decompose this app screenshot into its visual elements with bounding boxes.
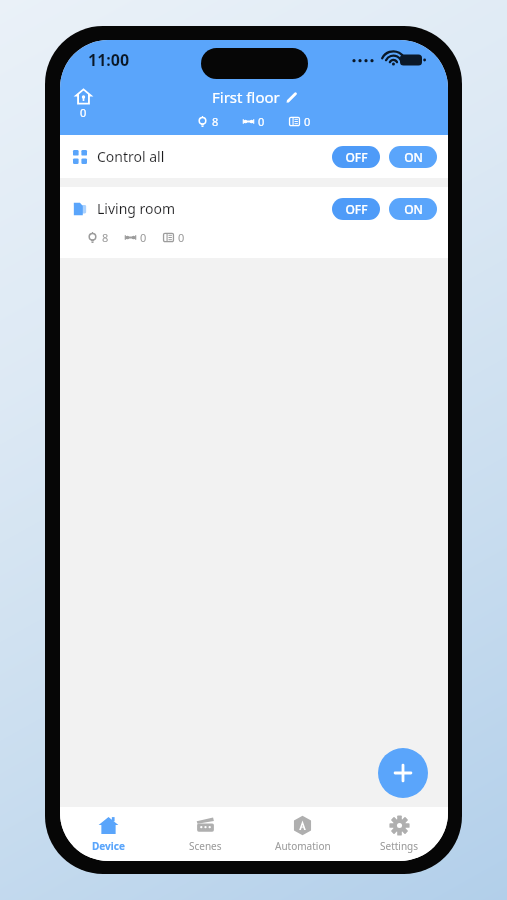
staticText: 0 — [178, 230, 185, 245]
button[interactable]: Device — [60, 807, 157, 861]
staticText: 8 — [212, 114, 219, 129]
staticText: OFF — [345, 201, 368, 217]
button[interactable]: OFF — [332, 146, 380, 168]
staticText: 0 — [304, 114, 311, 129]
staticText: ON — [404, 149, 423, 165]
staticText: Settings — [380, 839, 419, 853]
button[interactable]: OFF — [332, 198, 380, 220]
button[interactable]: ON — [389, 146, 437, 168]
staticText: First floor — [212, 87, 280, 107]
staticText: Control all — [97, 147, 165, 166]
staticText: Device — [92, 839, 125, 853]
staticText: 0 — [140, 230, 147, 245]
staticText: ON — [404, 201, 423, 217]
staticText: 11:00 — [88, 49, 130, 71]
button[interactable]: Living room — [60, 187, 448, 258]
button[interactable]: Settings — [351, 807, 448, 861]
button[interactable]: Automation — [254, 807, 351, 861]
staticText: 0 — [258, 114, 265, 129]
button[interactable]: Scenes — [157, 807, 254, 861]
staticText: OFF — [345, 149, 368, 165]
staticText: 0 — [80, 105, 87, 120]
staticText: Living room — [97, 199, 176, 218]
button[interactable]: ON — [389, 198, 437, 220]
button[interactable]: Home — [70, 88, 97, 120]
staticText: Scenes — [189, 839, 222, 853]
button[interactable]: First floor — [212, 87, 297, 107]
button[interactable]: Add device — [378, 748, 428, 798]
staticText: 8 — [102, 230, 109, 245]
button[interactable]: Control all — [60, 135, 448, 178]
staticText: Automation — [275, 839, 331, 853]
